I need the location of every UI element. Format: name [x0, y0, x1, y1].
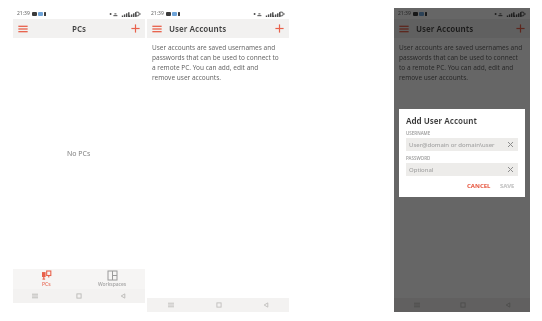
staticText: PCs	[72, 23, 87, 34]
staticText: SAVE	[500, 182, 515, 190]
button[interactable]: Home	[57, 289, 101, 303]
button[interactable]: Recents	[13, 289, 57, 303]
staticText: PASSWORD	[406, 155, 431, 161]
button[interactable]: Home	[195, 298, 242, 312]
button[interactable]: Add	[129, 22, 142, 35]
button[interactable]: Optional	[406, 163, 518, 176]
button[interactable]: Clear USERNAME	[506, 140, 515, 149]
staticText: Add User Account	[406, 115, 477, 126]
staticText: PCs	[42, 281, 51, 288]
button[interactable]: Back	[101, 289, 145, 303]
staticText: User Accounts	[416, 23, 474, 34]
button[interactable]: Open navigation menu	[16, 22, 29, 35]
button[interactable]: User@domain or domain\user	[406, 138, 518, 151]
button[interactable]: PCs	[13, 269, 79, 289]
button[interactable]: CANCEL	[464, 181, 494, 191]
staticText: User@domain or domain\user	[409, 141, 506, 149]
button[interactable]: Open navigation menu	[397, 22, 410, 35]
staticText: 21:39	[151, 10, 164, 17]
staticText: USERNAME	[406, 130, 431, 136]
staticText: No PCs	[67, 149, 91, 159]
staticText: User accounts are saved usernames and pa…	[152, 43, 283, 82]
staticText: 21:39	[17, 10, 30, 17]
staticText: Workspaces	[98, 281, 127, 288]
button[interactable]: SAVE	[497, 181, 518, 191]
staticText: 21:39	[398, 10, 411, 17]
staticText: User Accounts	[169, 23, 227, 34]
button[interactable]: Add	[273, 22, 286, 35]
button[interactable]: Workspaces	[79, 269, 145, 289]
button[interactable]: Back	[242, 298, 289, 312]
staticText: Optional	[409, 166, 506, 174]
button[interactable]: Recents	[147, 298, 195, 312]
button[interactable]: Open navigation menu	[150, 22, 163, 35]
staticText: User accounts are saved usernames and pa…	[399, 43, 524, 82]
button[interactable]: Add	[514, 22, 527, 35]
staticText: CANCEL	[467, 182, 491, 190]
button[interactable]: Clear PASSWORD	[506, 165, 515, 174]
